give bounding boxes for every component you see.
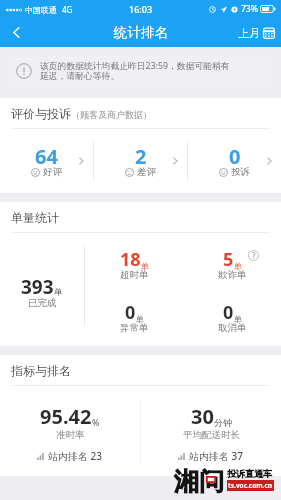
staticText: 统计排名 — [114, 24, 168, 41]
staticText: 站内排名 23 — [48, 449, 103, 463]
staticText: 平均配送时长 — [183, 429, 240, 441]
staticText: 16:03 — [129, 3, 153, 15]
staticText: 4G — [62, 4, 73, 15]
button[interactable]: 0 — [188, 129, 281, 193]
staticText: 该页的数据统计均截止昨日23:59，数据可能稍有 延迟，请耐心等待。 — [40, 60, 230, 82]
staticText: 2 — [135, 143, 147, 170]
staticText: 0 — [223, 300, 234, 325]
button[interactable]: 0 — [183, 289, 281, 346]
staticText: 单 — [141, 261, 149, 271]
staticText: 5 — [223, 247, 234, 272]
staticText: 超时单 — [120, 269, 149, 281]
button[interactable]: 18 — [85, 233, 183, 289]
staticText: 单量统计 — [11, 210, 59, 225]
staticText: 好评 — [43, 166, 62, 178]
staticText: 单 — [234, 314, 242, 324]
staticText: 投诉 — [231, 166, 250, 178]
staticText: 单 — [54, 287, 63, 298]
staticText: 分钟 — [214, 417, 232, 428]
staticText: % — [92, 416, 100, 428]
button[interactable]: 上月 — [238, 26, 275, 40]
staticText: 0 — [229, 143, 241, 170]
staticText: 站内排名 37 — [189, 449, 244, 463]
button[interactable]: 30 — [141, 386, 281, 476]
staticText: 准时率 — [56, 429, 85, 441]
staticText: 取消单 — [218, 322, 247, 334]
staticText: 差评 — [137, 166, 156, 178]
button[interactable]: 64 — [0, 129, 93, 193]
staticText: 64 — [35, 143, 58, 170]
staticText: 投诉直通车 — [227, 468, 272, 479]
staticText: 异常单 — [120, 322, 149, 334]
staticText: 30 — [191, 403, 214, 430]
button[interactable]: Help — [248, 250, 259, 261]
button[interactable]: 0 — [85, 289, 183, 346]
staticText: 单 — [234, 261, 242, 271]
staticText: 上月 — [238, 26, 260, 40]
staticText: 73% — [241, 3, 258, 15]
staticText: 18 — [120, 247, 141, 272]
staticText: 单 — [136, 314, 144, 324]
staticText: 中国联通 — [25, 5, 57, 15]
staticText: ts.voc.com.cn — [228, 481, 273, 490]
button[interactable]: 95.42 — [0, 386, 140, 476]
staticText: 已完成 — [28, 297, 57, 309]
staticText: 95.42 — [40, 403, 92, 430]
button[interactable]: 2 — [94, 129, 187, 193]
button[interactable]: 5 — [183, 233, 281, 289]
staticText: 欺诈单 — [218, 269, 247, 281]
button[interactable]: Back — [0, 18, 32, 47]
staticText: ? — [252, 250, 256, 261]
staticText: 评价与投诉 — [11, 106, 71, 121]
staticText: 393 — [21, 274, 54, 300]
staticText: 指标与排名 — [11, 363, 71, 378]
staticText: （顾客及商户数据） — [71, 109, 152, 120]
staticText: 0 — [125, 300, 136, 325]
staticText: 湘问 — [174, 466, 224, 497]
